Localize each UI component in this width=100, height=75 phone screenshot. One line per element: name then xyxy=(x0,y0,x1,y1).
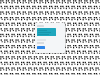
button[interactable] xyxy=(37,28,56,36)
button[interactable]: Confirm xyxy=(37,46,45,49)
